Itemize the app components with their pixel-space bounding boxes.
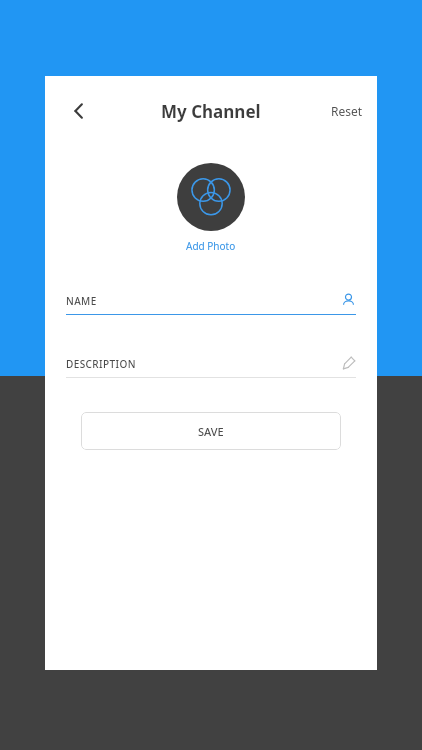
staticText: DESCRIPTION [66,357,340,371]
staticText: NAME [66,294,340,308]
button[interactable]: Description [66,349,356,378]
staticText: SAVE [198,424,224,439]
button[interactable]: Add Photo [45,163,377,253]
staticText: Reset [331,103,363,119]
staticText: Add Photo [186,239,236,253]
staticText: My Channel [161,100,261,123]
button[interactable]: Reset [317,93,377,129]
button[interactable]: SAVE [81,412,341,450]
button[interactable]: Back [57,89,101,133]
button[interactable]: Name [66,286,356,315]
